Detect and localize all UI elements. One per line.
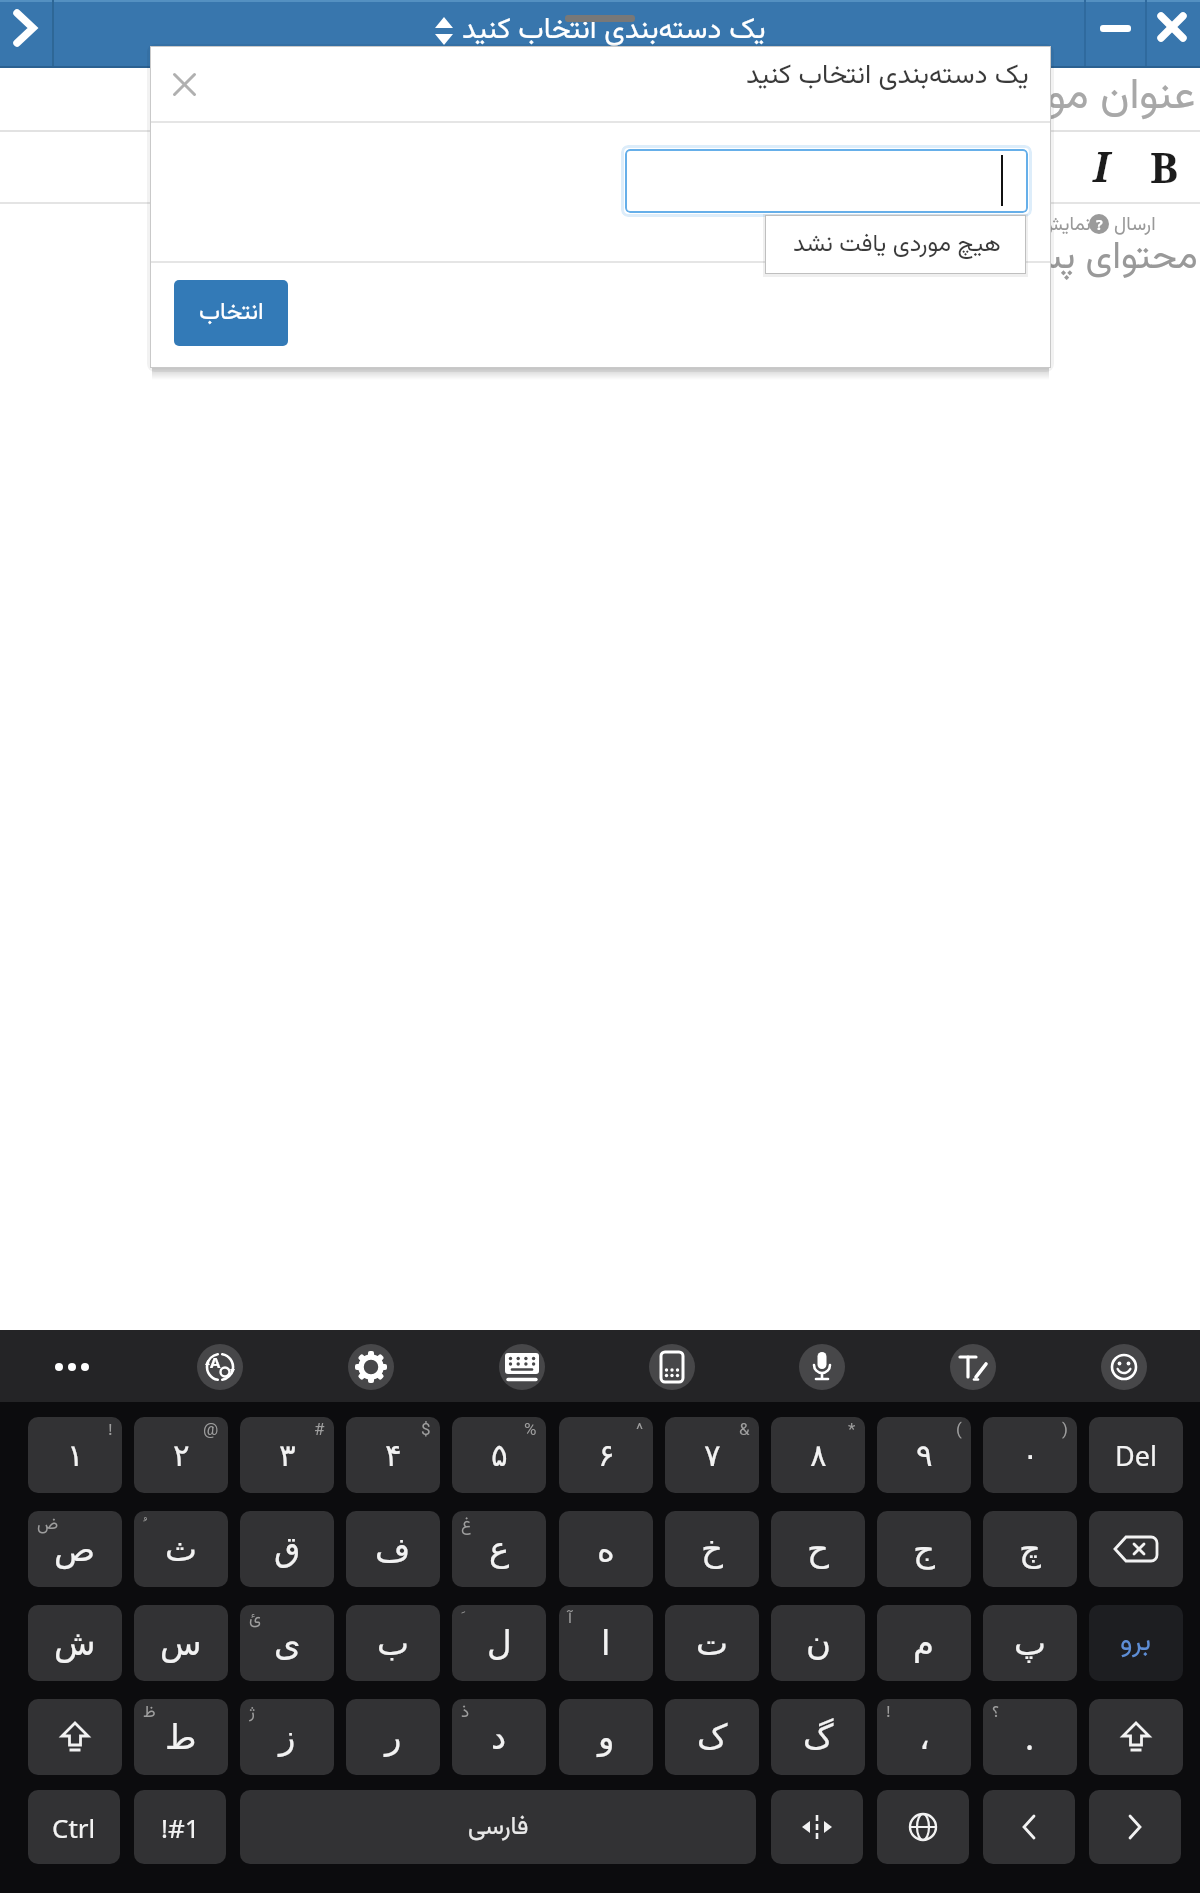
button[interactable]: . <box>983 1699 1077 1775</box>
staticText: @ <box>203 1418 219 1445</box>
staticText: ? <box>1096 215 1103 234</box>
button[interactable]: ر <box>346 1699 440 1775</box>
button[interactable]: و <box>559 1699 653 1775</box>
button[interactable]: ن <box>771 1605 865 1681</box>
staticText: ظ <box>143 1700 156 1727</box>
button[interactable] <box>983 1790 1075 1864</box>
button[interactable]: ب <box>346 1605 440 1681</box>
staticText: ۷ <box>704 1437 721 1473</box>
staticText: $ <box>421 1418 431 1445</box>
staticText: ش <box>54 1623 96 1663</box>
button[interactable] <box>28 1699 122 1775</box>
staticText: ! <box>886 1700 891 1727</box>
button[interactable]: Del <box>1089 1417 1183 1493</box>
button[interactable] <box>1148 4 1196 52</box>
button[interactable]: ۸ <box>771 1417 865 1493</box>
staticText: ح <box>807 1529 829 1569</box>
button[interactable]: ص <box>28 1511 122 1587</box>
button[interactable]: خ <box>665 1511 759 1587</box>
staticText: هیچ موردی یافت نشد <box>793 226 1001 264</box>
button[interactable]: انتخاب <box>174 280 288 346</box>
button[interactable]: !#1 <box>134 1790 226 1864</box>
button[interactable]: Ctrl <box>28 1790 120 1864</box>
button[interactable]: ۴ <box>346 1417 440 1493</box>
staticText: ج <box>913 1529 935 1569</box>
staticText: چ <box>1019 1529 1041 1569</box>
button[interactable]: ط <box>134 1699 228 1775</box>
staticText: ژ <box>249 1700 255 1727</box>
staticText: ۵ <box>491 1437 508 1473</box>
button[interactable] <box>1090 8 1140 48</box>
button[interactable]: ز <box>240 1699 334 1775</box>
button[interactable]: ه <box>559 1511 653 1587</box>
button[interactable] <box>499 1344 545 1390</box>
button[interactable]: ح <box>771 1511 865 1587</box>
button[interactable] <box>877 1790 969 1864</box>
button[interactable] <box>1089 1790 1181 1864</box>
button[interactable] <box>1089 1511 1183 1587</box>
button[interactable] <box>168 68 200 100</box>
staticText: ( <box>956 1418 962 1445</box>
staticText: . <box>1025 1714 1035 1760</box>
button[interactable]: ، <box>877 1699 971 1775</box>
button[interactable]: ی <box>240 1605 334 1681</box>
button[interactable]: ۷ <box>665 1417 759 1493</box>
button[interactable]: گ <box>771 1699 865 1775</box>
button[interactable]: س <box>134 1605 228 1681</box>
staticText: نمایش <box>1040 211 1091 241</box>
staticText: عنوان موضوع <box>965 64 1196 131</box>
staticText: ؟ <box>992 1700 1000 1727</box>
staticText: یک دسته‌بندی انتخاب کنید <box>462 8 766 53</box>
button[interactable] <box>771 1790 863 1864</box>
staticText: ) <box>1062 1418 1068 1445</box>
staticText: A <box>210 1352 221 1372</box>
staticText: ت <box>696 1623 729 1663</box>
staticText: ارسال <box>1114 211 1156 241</box>
staticText: انتخاب <box>199 294 264 332</box>
button[interactable]: ت <box>665 1605 759 1681</box>
button[interactable] <box>1101 1344 1147 1390</box>
button[interactable]: ع <box>452 1511 546 1587</box>
button[interactable]: د <box>452 1699 546 1775</box>
button[interactable]: ۹ <box>877 1417 971 1493</box>
button[interactable]: ل <box>452 1605 546 1681</box>
staticText: خ <box>701 1529 723 1569</box>
button[interactable]: ۲ <box>134 1417 228 1493</box>
staticText: ^ <box>636 1418 644 1445</box>
button[interactable]: ۶ <box>559 1417 653 1493</box>
staticText: ر <box>385 1717 402 1757</box>
staticText: آ <box>568 1606 572 1633</box>
button[interactable]: ق <box>240 1511 334 1587</box>
button[interactable]: ک <box>665 1699 759 1775</box>
button[interactable]: ۱ <box>28 1417 122 1493</box>
button[interactable] <box>950 1344 996 1390</box>
button[interactable]: م <box>877 1605 971 1681</box>
staticText: ن <box>806 1623 831 1663</box>
button[interactable]: ث <box>134 1511 228 1587</box>
staticText: ف <box>375 1529 411 1569</box>
button[interactable] <box>348 1344 394 1390</box>
staticText: ی <box>274 1623 301 1663</box>
button[interactable] <box>1089 1699 1183 1775</box>
button[interactable] <box>0 0 52 66</box>
staticText: ز <box>279 1717 296 1757</box>
button[interactable]: ج <box>877 1511 971 1587</box>
button[interactable]: ش <box>28 1605 122 1681</box>
button[interactable]: چ <box>983 1511 1077 1587</box>
button[interactable] <box>799 1344 845 1390</box>
button[interactable]: فارسی <box>240 1790 756 1864</box>
staticText: م <box>913 1623 935 1663</box>
button[interactable]: ف <box>346 1511 440 1587</box>
button[interactable]: ا <box>559 1605 653 1681</box>
staticText: # <box>314 1418 325 1445</box>
button[interactable]: ۵ <box>452 1417 546 1493</box>
staticText: ع <box>489 1529 510 1569</box>
staticText: پ <box>1014 1623 1047 1663</box>
button[interactable]: A <box>197 1344 243 1390</box>
button[interactable]: ۳ <box>240 1417 334 1493</box>
button[interactable]: پ <box>983 1605 1077 1681</box>
button[interactable] <box>649 1344 695 1390</box>
button[interactable] <box>49 1344 95 1390</box>
button[interactable]: ۰ <box>983 1417 1077 1493</box>
button[interactable]: برو <box>1089 1605 1183 1681</box>
